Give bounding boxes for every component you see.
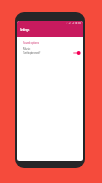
staticText: Turn this option on or off	[23, 51, 40, 55]
staticText: Music	[23, 47, 31, 51]
staticText: Settings	[20, 28, 30, 32]
button[interactable]: Toggle music	[72, 50, 81, 56]
button[interactable]: Music	[17, 46, 83, 58]
button[interactable]: Settings	[19, 27, 31, 33]
staticText: Sound options	[23, 41, 39, 45]
